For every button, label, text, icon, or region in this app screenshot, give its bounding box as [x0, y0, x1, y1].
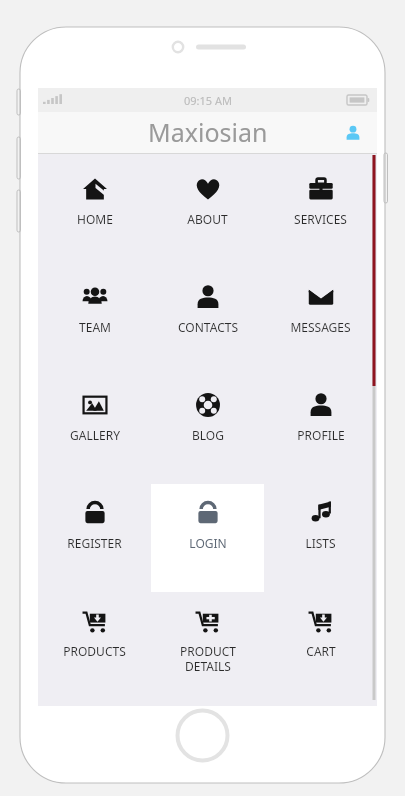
- staticText: PROFILE: [297, 427, 345, 443]
- button[interactable]: PROFILE: [264, 376, 377, 484]
- button[interactable]: PRODUCT DETAILS: [151, 592, 264, 700]
- button[interactable]: HOME: [38, 160, 151, 268]
- staticText: TEAM: [79, 319, 111, 335]
- button[interactable]: PRODUCTS: [38, 592, 151, 700]
- staticText: BLOG: [192, 427, 224, 443]
- button[interactable]: MESSAGES: [264, 268, 377, 376]
- button[interactable]: Home button: [175, 708, 230, 763]
- staticText: LISTS: [305, 535, 336, 551]
- staticText: PRODUCT DETAILS: [180, 643, 236, 674]
- staticText: GALLERY: [70, 427, 120, 443]
- staticText: 09:15 AM: [184, 93, 232, 108]
- button[interactable]: LISTS: [264, 484, 377, 592]
- staticText: CONTACTS: [178, 319, 238, 335]
- button[interactable]: LOGIN: [151, 484, 264, 592]
- staticText: SERVICES: [294, 211, 347, 227]
- staticText: PRODUCTS: [63, 643, 126, 659]
- staticText: CART: [306, 643, 336, 659]
- button[interactable]: GALLERY: [38, 376, 151, 484]
- staticText: MESSAGES: [290, 319, 351, 335]
- staticText: ABOUT: [187, 211, 228, 227]
- button[interactable]: Account: [337, 117, 369, 149]
- button[interactable]: TEAM: [38, 268, 151, 376]
- button[interactable]: CART: [264, 592, 377, 700]
- button[interactable]: ABOUT: [151, 160, 264, 268]
- button[interactable]: CONTACTS: [151, 268, 264, 376]
- button[interactable]: SERVICES: [264, 160, 377, 268]
- button[interactable]: BLOG: [151, 376, 264, 484]
- staticText: LOGIN: [189, 535, 227, 551]
- staticText: HOME: [77, 211, 113, 227]
- staticText: Maxiosian: [148, 115, 268, 149]
- button[interactable]: REGISTER: [38, 484, 151, 592]
- staticText: REGISTER: [67, 535, 122, 551]
